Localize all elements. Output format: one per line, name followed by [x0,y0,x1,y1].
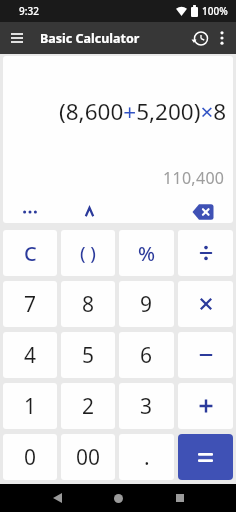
button[interactable]: 1 [3,383,57,429]
button[interactable]: % [119,230,174,276]
staticText: 0 [24,443,37,472]
button[interactable]: 2 [61,383,115,429]
button[interactable] [178,383,233,429]
staticText: 9 [140,290,153,319]
button[interactable] [178,281,233,327]
staticText: ( ) [80,241,96,266]
button[interactable]: C [3,230,57,276]
staticText: 5 [82,341,95,370]
button[interactable] [178,332,233,378]
staticText: 8 [82,290,95,319]
button[interactable]: 4 [3,332,57,378]
staticText: % [138,240,156,267]
staticText: Basic Calculator [40,30,140,47]
button[interactable]: ( ) [61,230,115,276]
button[interactable] [178,434,233,480]
button[interactable] [44,484,70,512]
staticText: 100% [202,4,228,18]
button[interactable] [6,27,28,49]
button[interactable]: 5 [61,332,115,378]
staticText: 4 [24,341,37,370]
button[interactable] [191,203,215,221]
button[interactable]: 3 [119,383,174,429]
button[interactable]: 00 [61,434,115,480]
button[interactable] [105,484,131,512]
staticText: . [144,443,150,472]
button[interactable]: 9 [119,281,174,327]
staticText: 6 [140,341,153,370]
staticText: 7 [24,290,37,319]
staticText: 3 [140,392,153,421]
staticText: 1 [24,392,37,421]
button[interactable] [188,26,212,50]
button[interactable]: 0 [3,434,57,480]
button[interactable] [178,230,233,276]
button[interactable] [212,28,232,48]
staticText: (8,600+5,200)×8 [59,96,227,127]
button[interactable]: 7 [3,281,57,327]
button[interactable] [20,204,40,220]
button[interactable] [79,203,99,221]
staticText: 110,400 [163,167,225,189]
staticText: C [24,240,37,267]
staticText: 00 [76,443,101,472]
button[interactable]: . [119,434,174,480]
staticText: 9:32 [19,4,39,18]
button[interactable]: 6 [119,332,174,378]
staticText: 2 [82,392,95,421]
button[interactable]: 8 [61,281,115,327]
button[interactable] [166,484,193,512]
